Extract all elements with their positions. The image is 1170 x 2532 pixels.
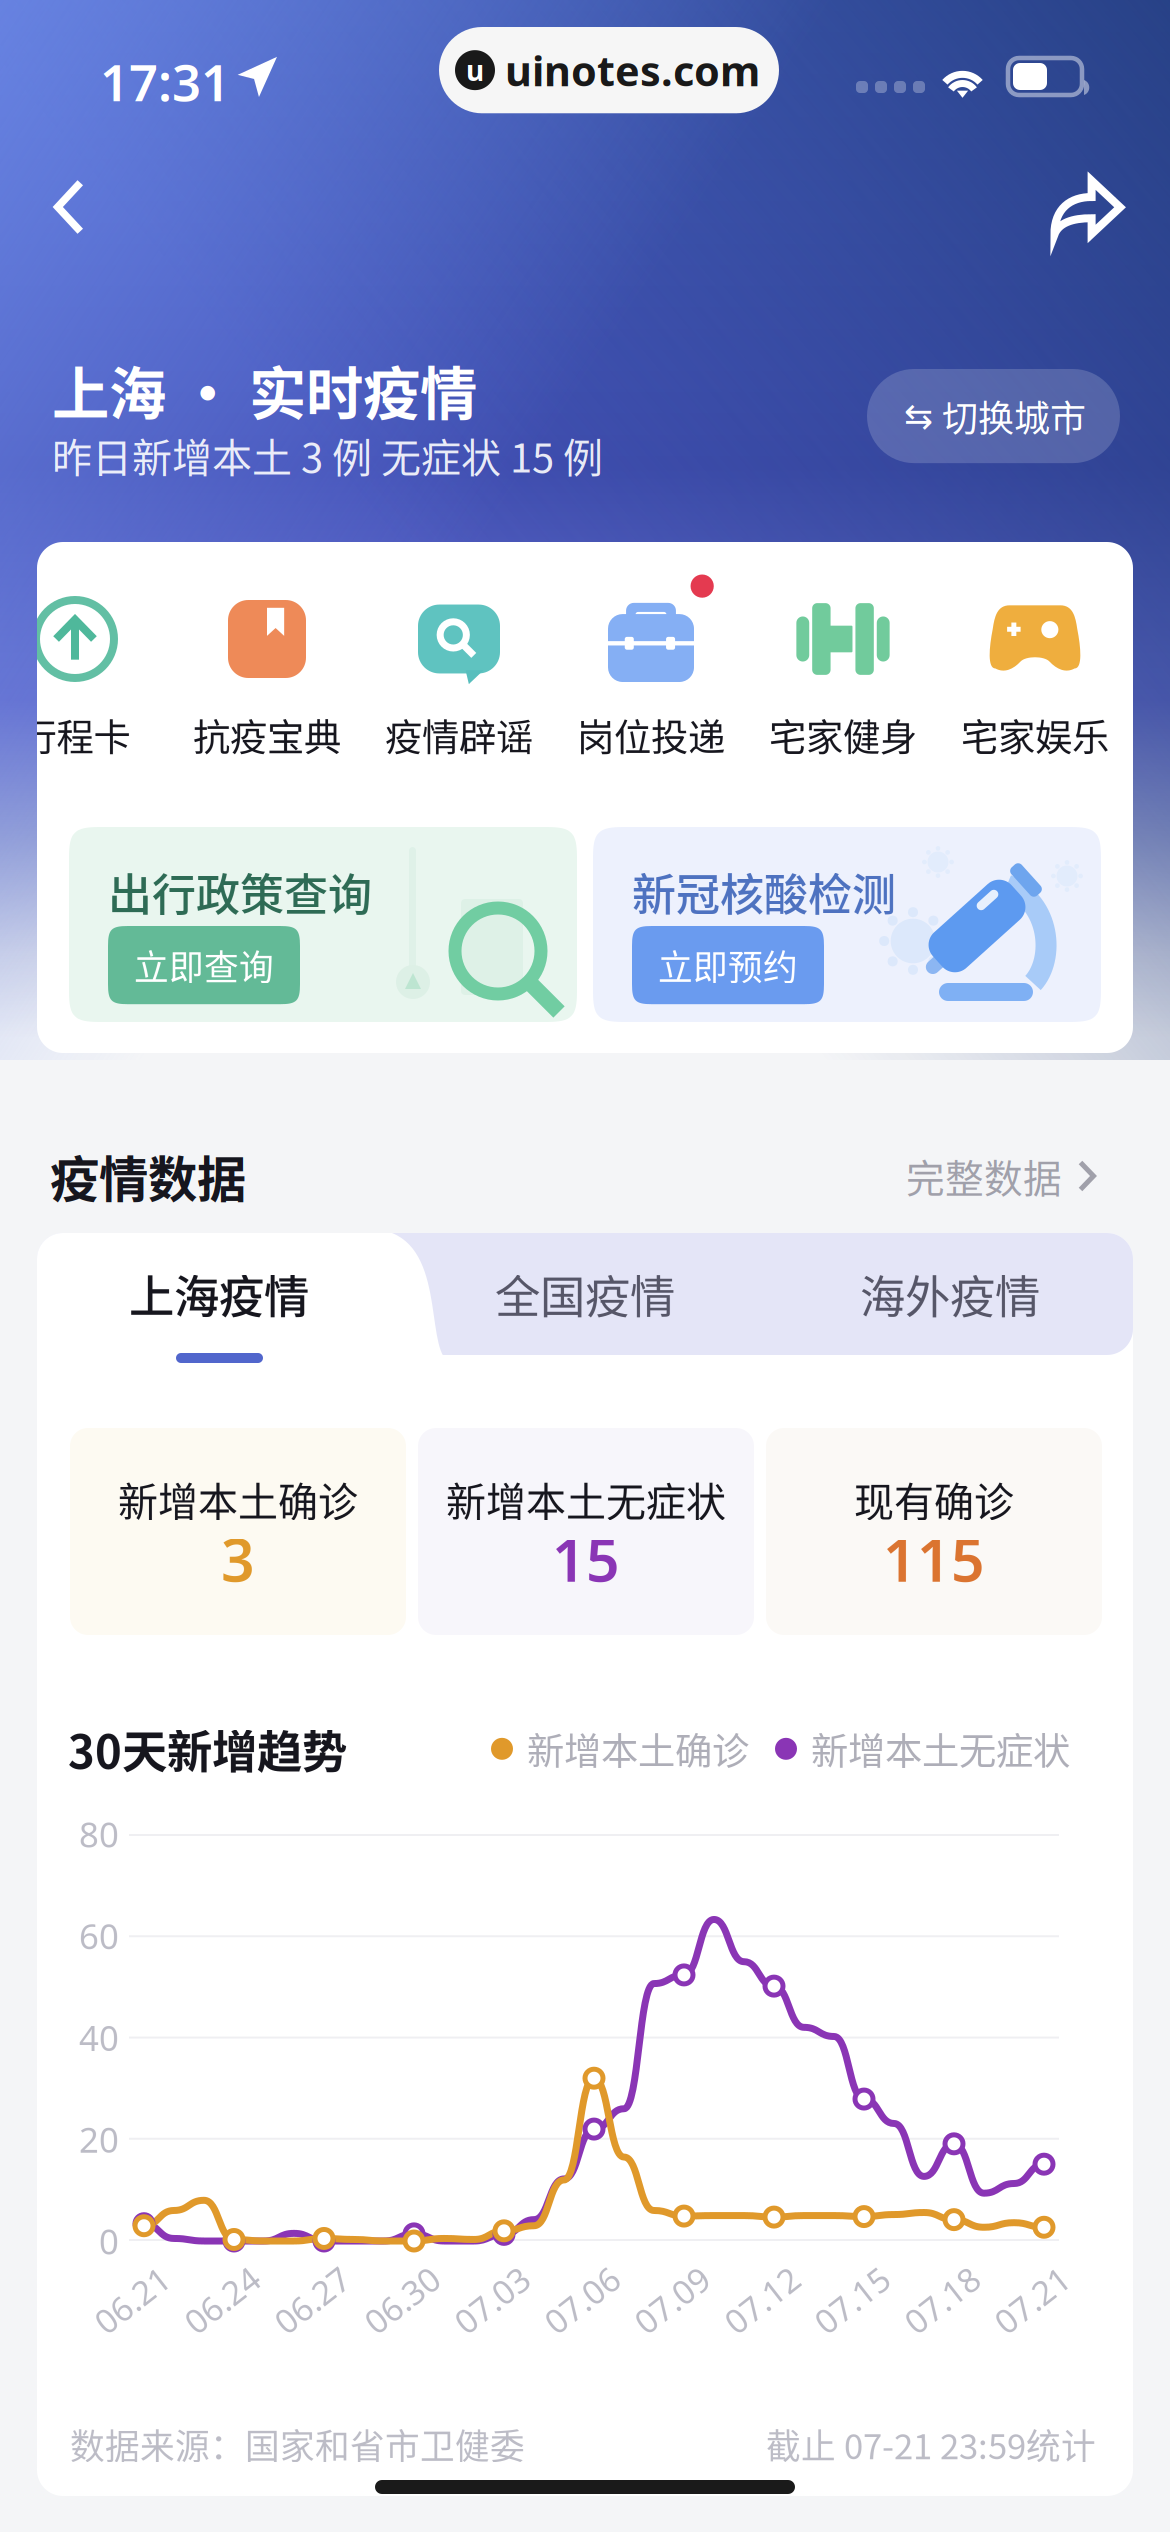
staticText: 30天新增趋势 — [68, 1716, 347, 1782]
staticText: 15 — [552, 1519, 620, 1599]
staticText: uinotes.com — [505, 42, 760, 98]
staticText: 06.30 — [359, 2277, 444, 2323]
staticText: 出行政策查询 — [108, 860, 372, 924]
staticText: 07.12 — [719, 2277, 804, 2323]
staticText: u — [466, 51, 484, 89]
button[interactable]: 行程卡 — [0, 596, 171, 762]
staticText: 完整数据 — [906, 1148, 1062, 1204]
staticText: 现有确诊 — [854, 1470, 1014, 1528]
staticText: 07.06 — [539, 2277, 624, 2323]
staticText: 06.21 — [89, 2277, 174, 2323]
staticText: 宅家健身 — [769, 708, 917, 762]
button[interactable]: 抗疫宝典 — [171, 596, 363, 762]
staticText: 新增本土确诊 — [527, 1722, 749, 1776]
staticText: 40 — [79, 2014, 119, 2061]
button[interactable]: Share — [1016, 147, 1157, 268]
button[interactable]: 疫情辟谣 — [363, 596, 555, 762]
staticText: 0 — [99, 2217, 119, 2265]
staticText: 06.24 — [179, 2277, 264, 2323]
staticText: 立即查询 — [134, 940, 274, 990]
staticText: 3 — [221, 1519, 255, 1599]
staticText: 全国疫情 — [495, 1261, 675, 1327]
button[interactable]: 完整数据 — [906, 1148, 1096, 1204]
staticText: 数据来源：国家和省市卫健委 — [70, 2419, 525, 2469]
button[interactable]: Back — [14, 147, 124, 267]
staticText: 疫情辟谣 — [385, 708, 533, 762]
staticText: 20 — [79, 2116, 119, 2163]
staticText: 上海 · 实时疫情 — [52, 348, 477, 431]
staticText: 17:31 — [100, 47, 230, 116]
staticText: 新增本土确诊 — [118, 1470, 358, 1528]
staticText: 07.18 — [899, 2277, 984, 2323]
button[interactable]: ⇆ — [867, 369, 1120, 463]
button[interactable]: 全国疫情 — [402, 1233, 768, 1355]
staticText: 行程卡 — [19, 708, 130, 762]
button[interactable]: 出行政策查询 — [69, 827, 577, 1022]
staticText: 抗疫宝典 — [193, 708, 341, 762]
button[interactable]: 海外疫情 — [767, 1233, 1133, 1355]
staticText: 07.15 — [809, 2277, 894, 2323]
staticText: 07.09 — [629, 2277, 714, 2323]
staticText: 新增本土无症状 — [446, 1470, 726, 1528]
staticText: 07.21 — [989, 2277, 1074, 2323]
staticText: 07.03 — [449, 2277, 534, 2323]
staticText: 宅家娱乐 — [961, 708, 1109, 762]
button[interactable]: 新冠核酸检测 — [593, 827, 1101, 1022]
staticText: 海外疫情 — [860, 1261, 1040, 1327]
staticText: 上海疫情 — [129, 1261, 309, 1327]
button[interactable]: 宅家健身 — [747, 596, 939, 762]
staticText: 115 — [883, 1519, 985, 1599]
staticText: 60 — [79, 1912, 119, 1959]
button[interactable]: 宅家娱乐 — [939, 596, 1131, 762]
staticText: ⇆ — [904, 396, 933, 436]
staticText: 80 — [79, 1810, 119, 1858]
button[interactable]: 岗位投递 — [555, 596, 747, 762]
staticText: 06.27 — [269, 2277, 354, 2323]
staticText: 新冠核酸检测 — [632, 860, 896, 924]
staticText: 新增本土无症状 — [811, 1722, 1070, 1776]
staticText: 截止 07-21 23:59统计 — [766, 2419, 1096, 2469]
staticText: 昨日新增本土 3 例 无症状 15 例 — [52, 426, 603, 484]
staticText: 立即预约 — [658, 940, 798, 990]
staticText: 切换城市 — [942, 390, 1086, 442]
staticText: 岗位投递 — [577, 708, 725, 762]
button[interactable]: 上海疫情 — [37, 1233, 403, 1363]
staticText: 疫情数据 — [50, 1140, 246, 1211]
